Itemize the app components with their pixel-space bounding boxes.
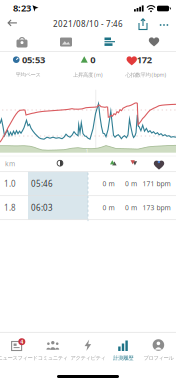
staticText: 0 m [125, 203, 137, 212]
staticText: 8:23 [13, 2, 31, 14]
staticText: 0 m [125, 179, 137, 188]
staticText: 心拍数平均 (bpm) [125, 71, 166, 78]
staticText: 06:03 [31, 202, 53, 213]
button[interactable]: Profile [139, 333, 176, 365]
button[interactable]: Photos [59, 35, 72, 49]
staticText: 1.8 [4, 202, 16, 213]
staticText: アクティビティ [70, 355, 105, 361]
button[interactable]: Laps [15, 35, 28, 49]
staticText: 1 [85, 147, 88, 154]
staticText: 172 [137, 53, 152, 66]
staticText: コミュニティ [38, 355, 68, 361]
staticText: 計測履歴 [113, 355, 133, 361]
button[interactable]: Heart rate [148, 37, 159, 47]
staticText: 4 [20, 338, 23, 345]
staticText: 05:46 [31, 178, 53, 189]
button[interactable]: News feed [0, 333, 37, 365]
button[interactable]: History [104, 333, 142, 365]
staticText: ニュースフィード [0, 355, 38, 361]
button[interactable]: Share [138, 18, 148, 31]
button[interactable]: Community [34, 333, 72, 365]
staticText: 平均ペース [15, 71, 40, 78]
staticText: 05:53 [22, 53, 45, 66]
staticText: 171 bpm [142, 179, 170, 188]
button[interactable]: Activities [69, 333, 107, 365]
button[interactable]: More [157, 19, 171, 31]
staticText: 0 m [102, 179, 114, 188]
staticText: 173 bpm [142, 203, 170, 212]
staticText: 2021/08/10 - 7:46 [53, 19, 123, 29]
button[interactable]: Back [7, 16, 17, 29]
staticText: 0 [90, 53, 95, 66]
staticText: プロフィール [143, 355, 173, 361]
staticText: 1.0 [4, 178, 16, 189]
staticText: 0 m [102, 203, 114, 212]
button[interactable]: Stats [104, 37, 115, 46]
staticText: 上昇高度 (m) [73, 71, 103, 78]
staticText: km [5, 159, 15, 168]
